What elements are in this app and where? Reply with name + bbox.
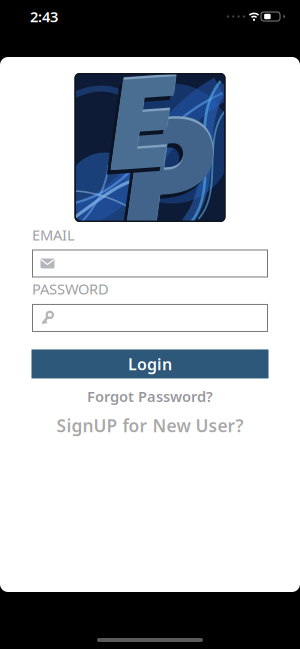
staticText: E: [106, 34, 176, 200]
staticText: P: [114, 70, 212, 279]
button[interactable]: [32, 250, 267, 277]
staticText: SignUP for New User?: [56, 414, 243, 437]
staticText: Forgot Password?: [87, 386, 213, 406]
staticText: P: [119, 64, 217, 272]
button[interactable]: [32, 304, 267, 331]
staticText: PASSWORD: [32, 279, 109, 298]
staticText: EMAIL: [32, 225, 75, 244]
staticText: E: [101, 40, 171, 207]
button[interactable]: SignUP for New User?: [56, 414, 243, 437]
button[interactable]: Forgot Password?: [87, 386, 213, 406]
button[interactable]: Login: [31, 349, 268, 378]
staticText: Login: [128, 353, 172, 374]
staticText: 2:43: [30, 7, 58, 26]
staticText: P: [118, 66, 216, 275]
staticText: E: [105, 36, 175, 203]
